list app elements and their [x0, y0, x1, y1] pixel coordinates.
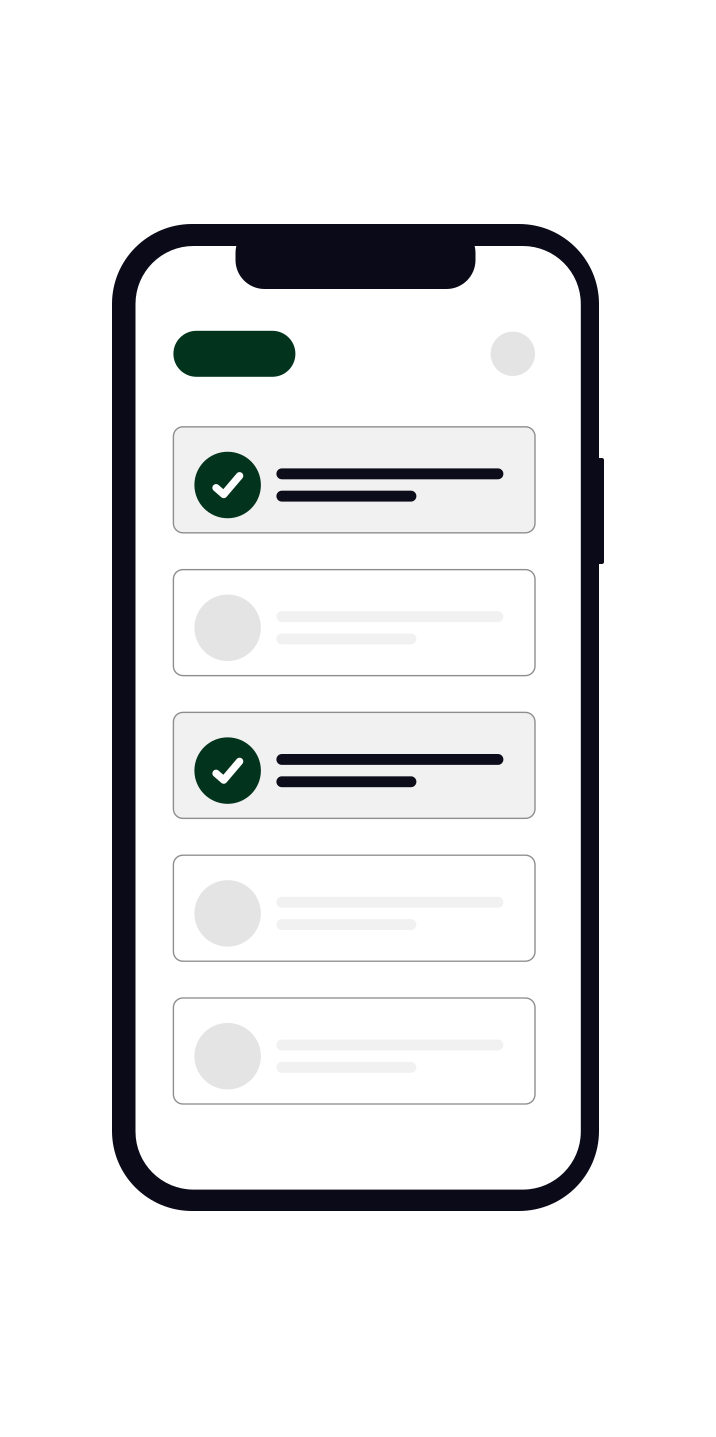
button[interactable]: Task 1, completed [173, 427, 535, 533]
button[interactable]: Task 2, not completed [173, 570, 535, 676]
button[interactable]: Task 3, completed [173, 712, 535, 818]
button[interactable]: Task 5, not completed [173, 998, 535, 1104]
button[interactable]: Task 4, not completed [173, 855, 535, 961]
button[interactable]: Profile [491, 332, 535, 376]
